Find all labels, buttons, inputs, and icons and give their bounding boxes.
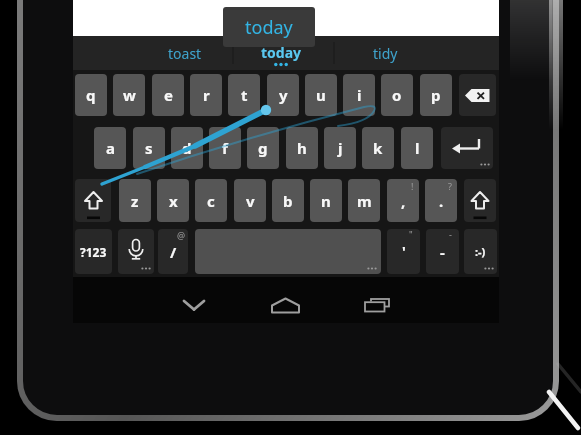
button[interactable]: g (247, 127, 279, 169)
button[interactable]: s (133, 127, 165, 169)
staticText: ?123 (80, 244, 107, 260)
staticText: h (297, 138, 307, 158)
staticText: m (357, 191, 372, 211)
staticText: x (169, 191, 178, 211)
button[interactable]: n (310, 179, 342, 222)
staticText: n (321, 191, 331, 211)
staticText: y (279, 85, 288, 105)
staticText: t (241, 85, 248, 105)
button[interactable]: ' (387, 229, 420, 274)
button[interactable] (441, 127, 493, 169)
button[interactable]: e (152, 74, 184, 116)
button[interactable]: - (426, 229, 459, 274)
button[interactable] (459, 74, 496, 116)
staticText: . (439, 191, 444, 211)
staticText: :-) (475, 244, 486, 259)
button[interactable]: r (190, 74, 222, 116)
staticText: s (145, 138, 153, 158)
button[interactable]: f (209, 127, 241, 169)
button[interactable]: i (343, 74, 375, 116)
staticText: q (86, 85, 96, 105)
button[interactable]: :-) (464, 229, 497, 274)
button[interactable]: y (267, 74, 299, 116)
staticText: f (222, 138, 228, 158)
button[interactable]: x (157, 179, 189, 222)
staticText: today (245, 15, 293, 40)
staticText: / (170, 242, 177, 262)
staticText: e (164, 85, 173, 105)
button[interactable] (357, 291, 393, 321)
button[interactable]: ?123 (75, 229, 112, 274)
button[interactable]: p (420, 74, 452, 116)
staticText: ! (411, 180, 414, 192)
staticText: toast (168, 44, 202, 63)
staticText: a (106, 138, 115, 158)
staticText: - (440, 242, 445, 262)
staticText: - (449, 228, 452, 240)
button[interactable]: v (234, 179, 266, 222)
staticText: z (131, 191, 139, 211)
button[interactable]: t (228, 74, 260, 116)
button[interactable] (75, 179, 111, 222)
button[interactable]: c (195, 179, 227, 222)
staticText: p (431, 85, 441, 105)
button[interactable]: / (158, 229, 188, 274)
staticText: r (203, 85, 210, 105)
staticText: " (409, 228, 413, 240)
button[interactable]: today (241, 39, 321, 65)
staticText: @ (177, 229, 186, 241)
staticText: i (357, 85, 362, 105)
staticText: ? (448, 180, 452, 192)
staticText: d (182, 138, 192, 158)
button[interactable]: , (387, 179, 419, 222)
button[interactable] (266, 291, 306, 321)
button[interactable]: b (272, 179, 304, 222)
button[interactable] (118, 229, 154, 274)
staticText: k (373, 138, 383, 158)
button[interactable]: k (362, 127, 394, 169)
staticText: , (401, 191, 406, 211)
staticText: v (246, 191, 255, 211)
button[interactable] (176, 291, 212, 321)
button[interactable]: a (94, 127, 126, 169)
button[interactable]: tidy (345, 40, 425, 66)
button[interactable]: j (324, 127, 356, 169)
button[interactable]: q (75, 74, 107, 116)
button[interactable]: w (113, 74, 145, 116)
button[interactable] (464, 179, 496, 222)
button[interactable]: m (348, 179, 380, 222)
button[interactable]: . (425, 179, 457, 222)
staticText: today (261, 43, 302, 62)
staticText: j (338, 138, 343, 158)
staticText: g (258, 138, 268, 158)
staticText: w (123, 85, 136, 105)
button[interactable]: z (119, 179, 151, 222)
staticText: u (316, 85, 326, 105)
button[interactable]: o (381, 74, 413, 116)
staticText: c (207, 191, 215, 211)
staticText: b (283, 191, 293, 211)
button[interactable]: u (305, 74, 337, 116)
button[interactable]: toast (145, 40, 225, 66)
staticText: o (392, 85, 402, 105)
staticText: l (415, 138, 420, 158)
staticText: tidy (373, 44, 398, 63)
button[interactable]: l (401, 127, 433, 169)
staticText: ' (402, 242, 406, 261)
button[interactable]: d (171, 127, 203, 169)
button[interactable]: h (286, 127, 318, 169)
